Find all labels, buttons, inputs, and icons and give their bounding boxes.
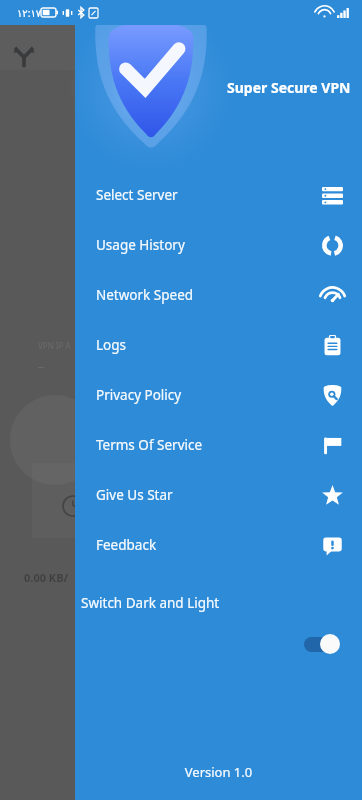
staticText: Version 1.0	[75, 763, 362, 781]
staticText: VPN IP A	[38, 340, 71, 351]
button[interactable]: Switch Dark and Light theme	[304, 634, 340, 654]
staticText: Privacy Policy	[96, 386, 182, 404]
staticText: Select Server	[96, 186, 178, 204]
staticText: Terms Of Service	[96, 436, 203, 454]
button[interactable]: Give Us Star	[75, 470, 362, 520]
staticText: Super Secure VPN	[227, 78, 351, 97]
button[interactable]: Usage History	[75, 220, 362, 270]
staticText: Network Speed	[96, 286, 194, 304]
button[interactable]: Terms Of Service	[75, 420, 362, 470]
other: Network Speed	[322, 285, 343, 306]
other: Give Us Star	[322, 485, 343, 506]
other: Terms Of Service	[322, 435, 343, 456]
button[interactable]: Network Speed	[75, 270, 362, 320]
staticText: –	[38, 358, 45, 374]
other: Usage History	[322, 235, 343, 256]
staticText: Logs	[96, 336, 127, 354]
staticText: ۱۲:۱۷	[17, 6, 42, 20]
button[interactable]: Privacy Policy	[75, 370, 362, 420]
staticText: Switch Dark and Light	[81, 594, 220, 612]
button[interactable]: Switch Dark and Light	[75, 584, 362, 622]
button[interactable]: Logs	[75, 320, 362, 370]
button[interactable]: Select Server	[75, 170, 362, 220]
staticText: 0.00 KB/	[24, 570, 69, 585]
other: Feedback	[322, 535, 343, 556]
button[interactable]: Menu	[13, 44, 35, 66]
staticText: Give Us Star	[96, 486, 173, 504]
button[interactable]: Feedback	[75, 520, 362, 570]
other: Select Server	[322, 185, 343, 206]
other: Privacy Policy	[322, 385, 343, 406]
staticText: Feedback	[96, 536, 157, 554]
other: Logs	[322, 335, 343, 356]
staticText: Usage History	[96, 236, 185, 254]
